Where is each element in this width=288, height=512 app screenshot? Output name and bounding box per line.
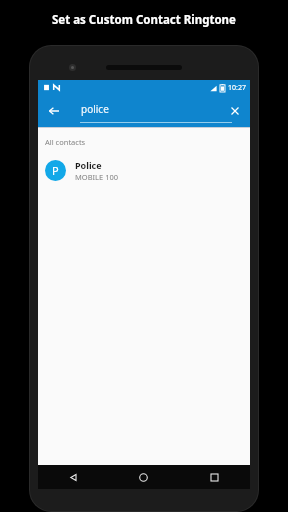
staticText: MOBILE 100 bbox=[75, 172, 118, 182]
staticText: Police bbox=[75, 159, 102, 171]
button[interactable]: Recents bbox=[179, 465, 250, 489]
button[interactable]: Clear search bbox=[224, 100, 246, 122]
button[interactable]: P bbox=[38, 155, 250, 185]
button[interactable]: Back bbox=[38, 465, 108, 489]
button[interactable]: Home bbox=[108, 465, 179, 489]
staticText: police bbox=[81, 102, 109, 116]
staticText: 10:27 bbox=[228, 83, 246, 93]
staticText: P bbox=[52, 163, 59, 178]
button[interactable]: Back bbox=[42, 99, 66, 123]
staticText: Set as Custom Contact Ringtone bbox=[52, 12, 236, 28]
staticText: All contacts bbox=[45, 137, 86, 147]
